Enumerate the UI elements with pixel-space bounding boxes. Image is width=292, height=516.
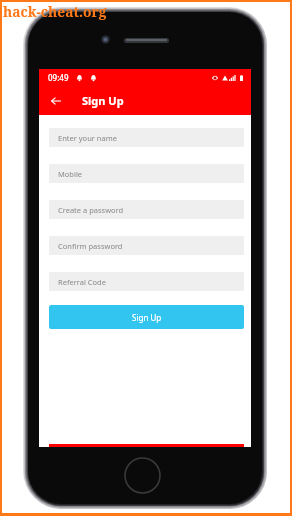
- staticText: hack-cheat.org: [3, 2, 107, 21]
- button[interactable]: Referral Code: [49, 272, 244, 291]
- staticText: Mobile: [58, 169, 83, 179]
- button[interactable]: Create a password: [49, 200, 244, 219]
- button[interactable]: Confirm password: [49, 236, 244, 255]
- staticText: 09:49: [48, 72, 69, 83]
- button[interactable]: Mobile: [49, 164, 244, 183]
- staticText: Referral Code: [58, 277, 106, 287]
- staticText: Sign Up: [82, 93, 124, 108]
- staticText: Confirm password: [58, 241, 123, 251]
- button[interactable]: Enter your name: [49, 128, 244, 147]
- button[interactable]: Back: [39, 86, 73, 115]
- staticText: Enter your name: [58, 133, 117, 143]
- staticText: Create a password: [58, 205, 124, 215]
- button[interactable]: Sign Up: [49, 305, 244, 329]
- staticText: Sign Up: [132, 312, 162, 323]
